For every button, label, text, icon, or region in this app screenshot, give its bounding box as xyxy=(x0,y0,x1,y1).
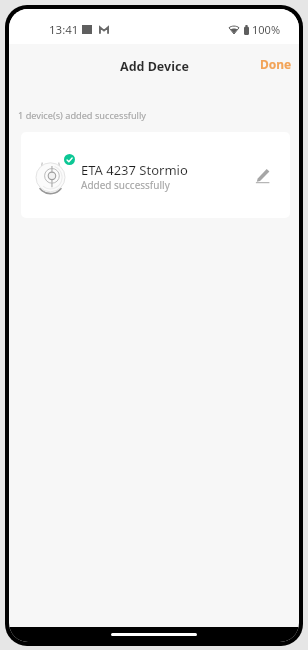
button[interactable]: ETA 4237 Stormio xyxy=(21,132,290,218)
button[interactable]: Edit device name xyxy=(249,162,275,188)
staticText: Add Device xyxy=(120,58,189,75)
staticText: ETA 4237 Stormio xyxy=(81,161,188,179)
staticText: 1 device(s) added successfully xyxy=(18,109,147,122)
staticText: Added successfully xyxy=(81,178,170,192)
staticText: Done xyxy=(260,56,292,72)
staticText: 100% xyxy=(252,22,281,37)
staticText: 13:41 xyxy=(49,22,79,38)
button[interactable]: Done xyxy=(251,48,299,80)
